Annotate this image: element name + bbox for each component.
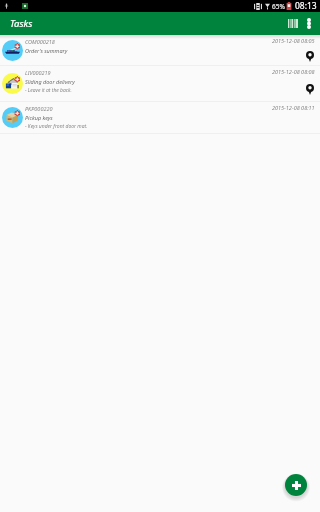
staticText: 2015-12-08 08:11 — [272, 104, 315, 111]
button[interactable]: Scan barcode — [277, 12, 298, 35]
staticText: 2015-12-08 08:08 — [272, 68, 315, 75]
staticText: 2015-12-08 08:05 — [272, 37, 315, 44]
button[interactable]: More options — [299, 12, 320, 35]
button[interactable]: PKP000220 — [0, 102, 320, 134]
staticText: PKP000220 — [25, 105, 53, 112]
staticText: Pickup keys — [25, 114, 53, 121]
staticText: Sliding door delivery — [25, 78, 75, 85]
staticText: - Leave it at the back. — [25, 87, 72, 94]
staticText: Tasks — [10, 17, 33, 30]
staticText: 65% — [272, 2, 285, 11]
button[interactable]: COM000218 — [0, 35, 320, 66]
button[interactable]: Add task — [285, 474, 307, 496]
staticText: 08:13 — [295, 0, 317, 12]
button[interactable]: LIV000219 — [0, 66, 320, 102]
staticText: LIV000219 — [25, 69, 51, 76]
staticText: COM000218 — [25, 38, 55, 45]
staticText: - Keys under front door mat. — [25, 123, 88, 130]
staticText: Order's summary — [25, 47, 68, 54]
